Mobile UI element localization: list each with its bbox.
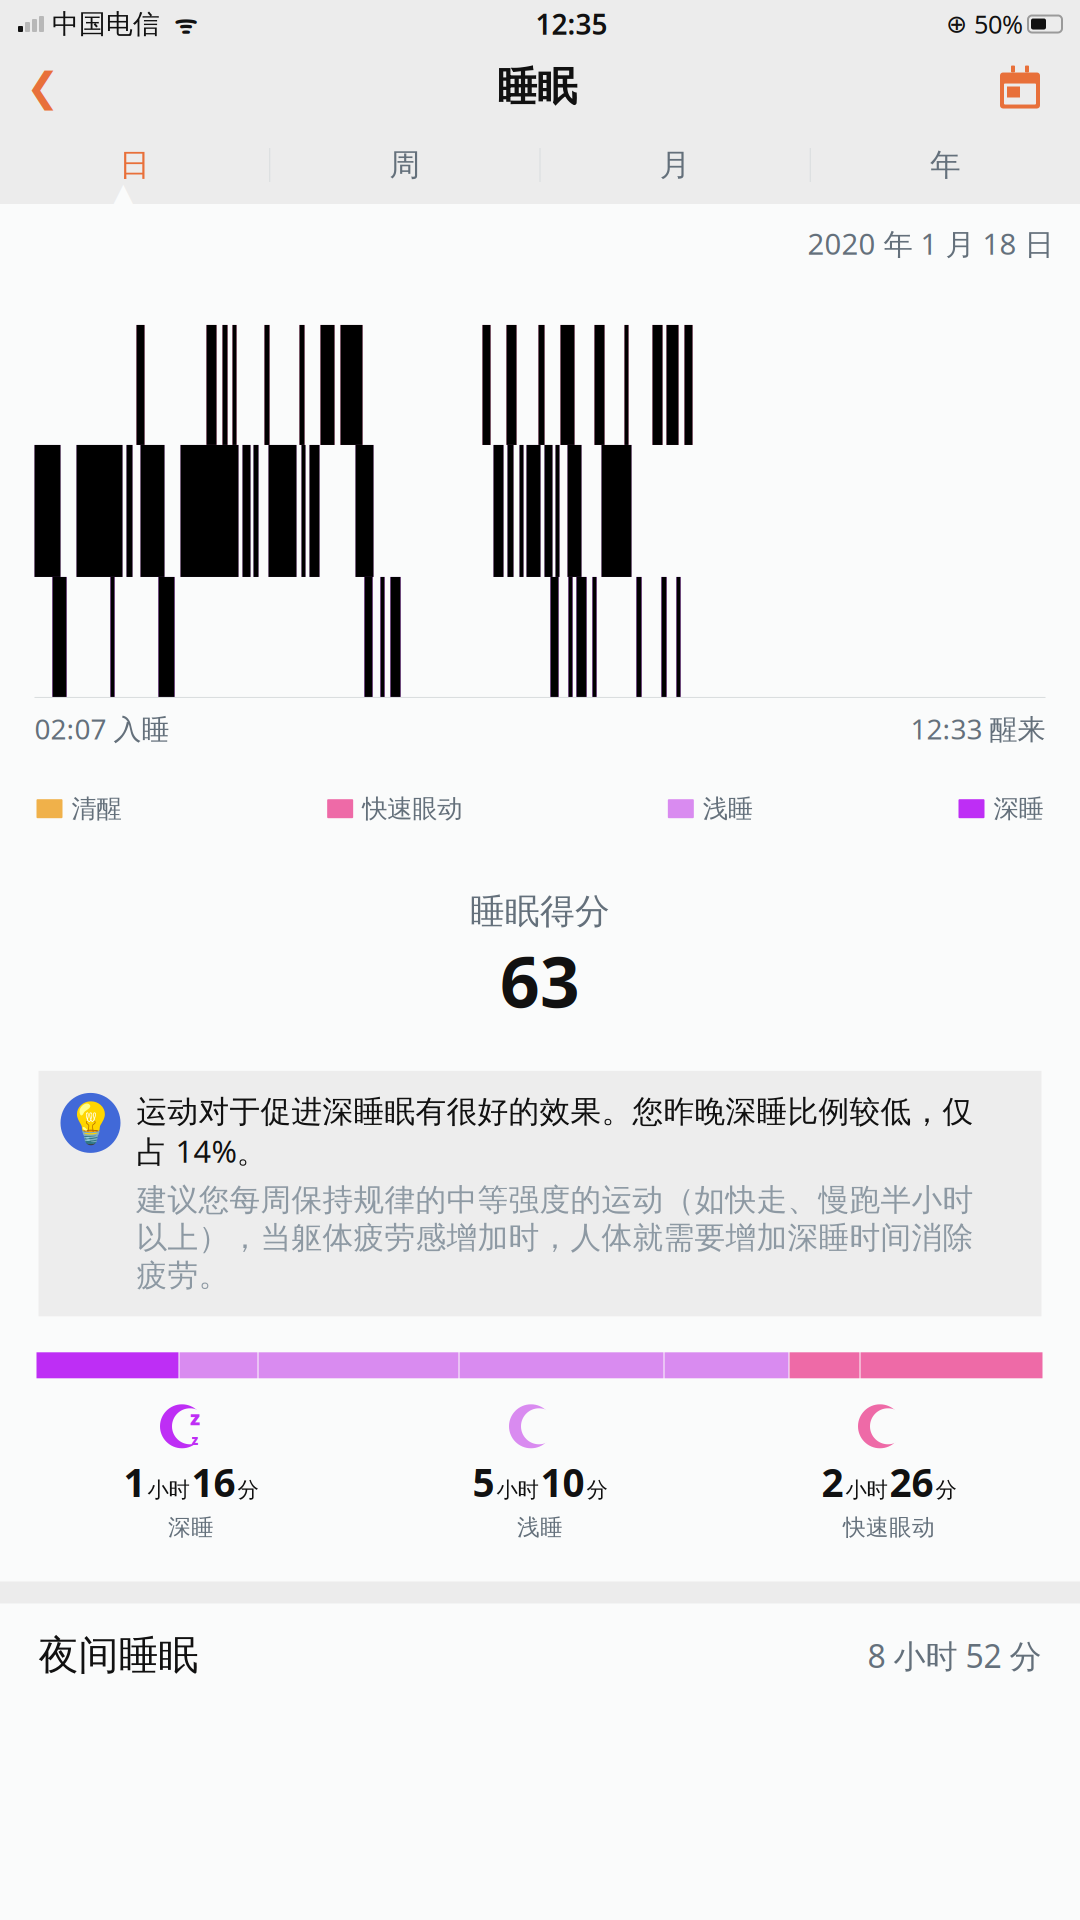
staticText: 8 小时 52 分 xyxy=(867,1634,1041,1677)
staticText: 16 xyxy=(191,1456,235,1508)
button[interactable]: 返回 xyxy=(0,56,90,118)
staticText: 63 xyxy=(500,935,580,1027)
staticText: 26 xyxy=(889,1456,933,1508)
staticText: 周 xyxy=(389,146,420,184)
staticText: 02:07 入睡 xyxy=(34,710,169,747)
staticText: 💡 xyxy=(65,1100,115,1146)
staticText: 深睡 xyxy=(993,793,1043,824)
staticText: 小时 xyxy=(147,1477,189,1503)
staticText: 小时 xyxy=(496,1477,538,1503)
staticText: 睡眠 xyxy=(497,62,577,111)
staticText: 50% xyxy=(967,7,1023,41)
staticText: 年 xyxy=(930,146,961,184)
staticText: 深睡 xyxy=(168,1514,214,1541)
staticText: ❮ xyxy=(26,64,60,110)
staticText: 小时 xyxy=(845,1477,887,1503)
staticText: 分 xyxy=(935,1477,956,1503)
staticText: 月 xyxy=(660,146,691,184)
staticText: 分 xyxy=(586,1477,607,1503)
button[interactable]: 周 xyxy=(270,134,539,196)
staticText: 1 xyxy=(123,1456,145,1508)
button[interactable]: 月 xyxy=(540,134,810,196)
staticText: 清醒 xyxy=(71,793,121,824)
staticText: 2 xyxy=(821,1456,843,1508)
staticText: ᯤ xyxy=(160,7,197,41)
button[interactable]: 日 xyxy=(0,134,269,196)
staticText: 浅睡 xyxy=(517,1514,563,1541)
staticText: 日 xyxy=(119,146,150,184)
button[interactable]: 夜间睡眠 xyxy=(0,1603,1080,1707)
staticText: 快速眼动 xyxy=(362,793,462,824)
staticText: 睡眠得分 xyxy=(470,890,610,933)
staticText: 夜间睡眠 xyxy=(38,1631,198,1680)
staticText: 分 xyxy=(237,1477,258,1503)
staticText: z xyxy=(190,1404,200,1431)
staticText: ⊕ xyxy=(946,10,967,38)
staticText: 12:33 醒来 xyxy=(910,710,1045,747)
staticText: 10 xyxy=(540,1456,584,1508)
staticText: 浅睡 xyxy=(703,793,753,824)
staticText: z xyxy=(191,1431,198,1449)
staticText: 12:35 xyxy=(535,5,607,43)
staticText: 5 xyxy=(472,1456,494,1508)
staticText: 中国电信 xyxy=(44,8,160,40)
staticText: ▲ xyxy=(112,177,135,210)
staticText: 建议您每周保持规律的中等强度的运动（如快走、慢跑半小时以上），当躯体疲劳感增加时… xyxy=(136,1181,973,1294)
button[interactable]: 日历 xyxy=(984,56,1080,118)
staticText: 快速眼动 xyxy=(843,1514,935,1541)
staticText: 运动对于促进深睡眠有很好的效果。您昨晚深睡比例较低，仅占 14%。 xyxy=(136,1093,973,1171)
button[interactable]: 年 xyxy=(811,134,1080,196)
staticText: 2020 年 1 月 18 日 xyxy=(807,224,1053,263)
